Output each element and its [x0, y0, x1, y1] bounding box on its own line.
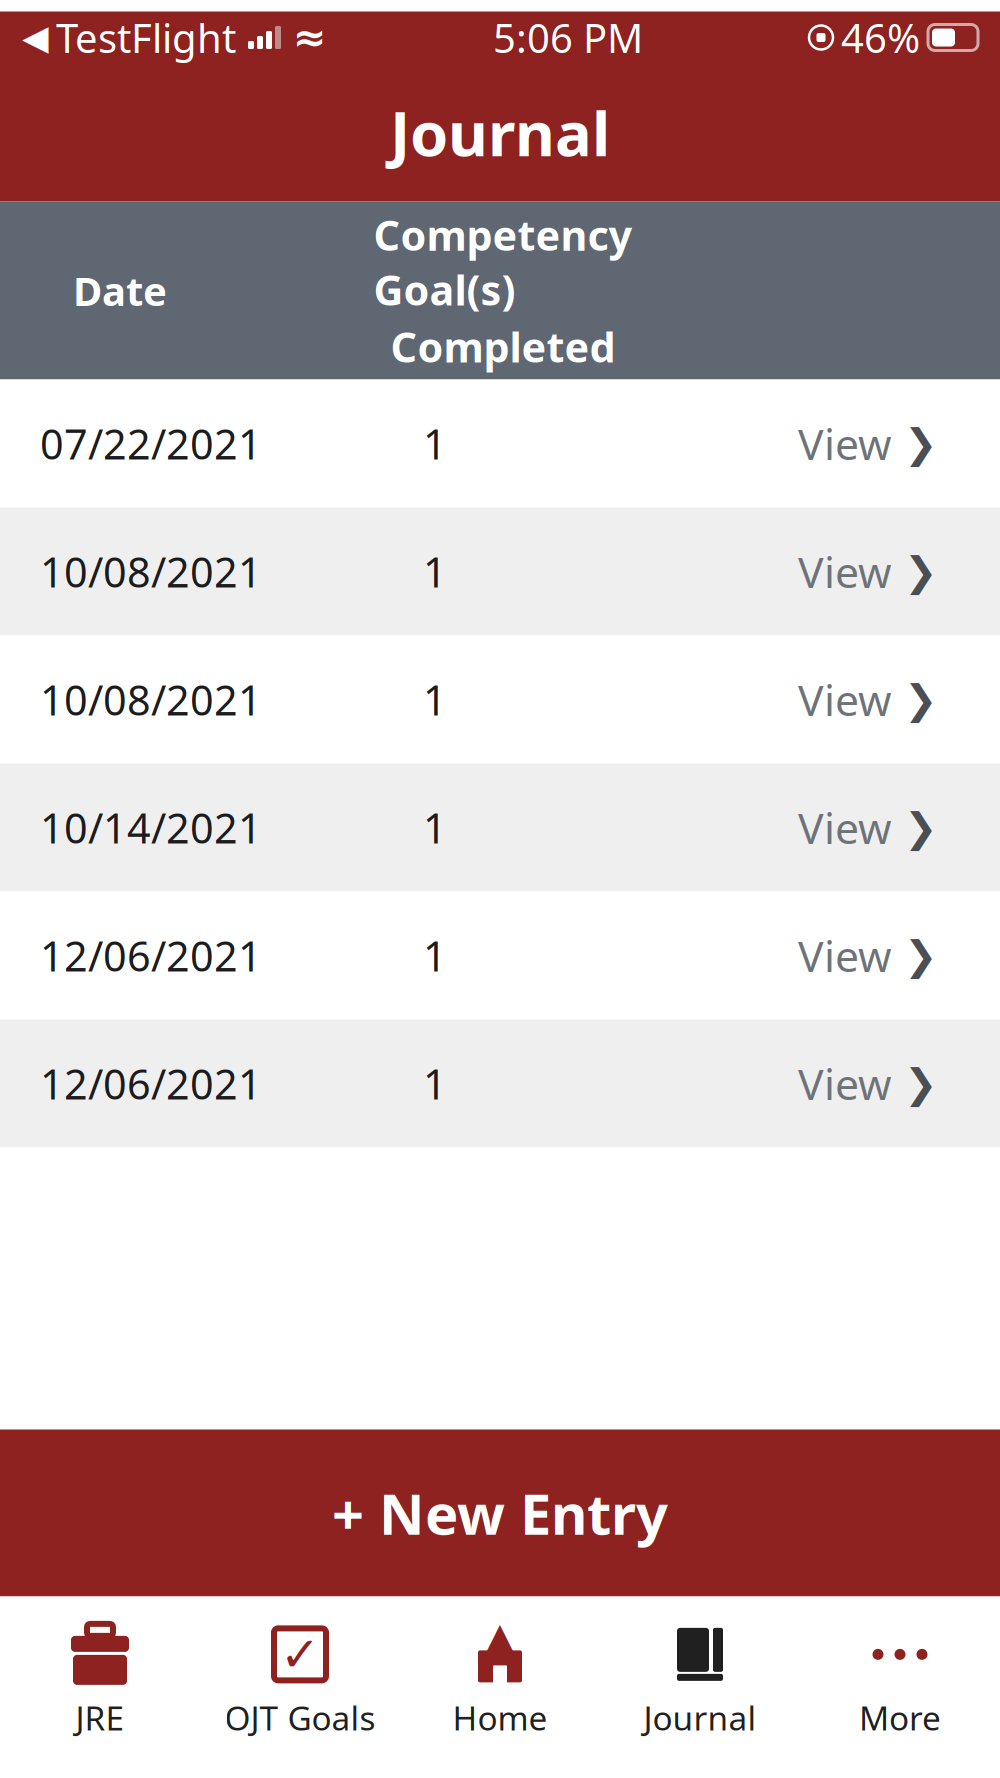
- staticText: 10/08/2021: [40, 672, 262, 727]
- button[interactable]: 07/22/2021: [0, 379, 1000, 507]
- button[interactable]: Journal: [600, 1606, 800, 1756]
- button[interactable]: + New Entry: [0, 1429, 1000, 1596]
- staticText: View: [798, 671, 892, 728]
- staticText: 07/22/2021: [40, 416, 262, 471]
- staticText: ❯: [904, 933, 938, 978]
- button[interactable]: 10/08/2021: [0, 635, 1000, 763]
- button[interactable]: 10/14/2021: [0, 763, 1000, 891]
- staticText: 1: [423, 544, 447, 599]
- button[interactable]: OJT Goals: [200, 1606, 400, 1756]
- staticText: Home: [452, 1695, 547, 1740]
- staticText: 5:06 PM: [493, 11, 643, 64]
- staticText: OJT Goals: [224, 1695, 375, 1740]
- staticText: TestFlight: [56, 11, 236, 64]
- staticText: View: [798, 799, 892, 856]
- staticText: View: [798, 927, 892, 984]
- staticText: View: [798, 415, 892, 472]
- staticText: 1: [423, 928, 447, 983]
- staticText: View: [798, 543, 892, 600]
- staticText: ≈: [293, 15, 327, 60]
- staticText: Completed: [390, 319, 615, 374]
- staticText: 1: [423, 800, 447, 855]
- staticText: ❯: [904, 1061, 938, 1106]
- staticText: + New Entry: [332, 1476, 668, 1550]
- staticText: 1: [423, 416, 447, 471]
- staticText: 12/06/2021: [40, 928, 262, 983]
- staticText: 1: [423, 1056, 447, 1111]
- staticText: ▲: [482, 1613, 517, 1664]
- staticText: ❯: [904, 805, 938, 850]
- staticText: ❯: [904, 677, 938, 722]
- staticText: 1: [423, 672, 447, 727]
- button[interactable]: 12/06/2021: [0, 1019, 1000, 1147]
- button[interactable]: 12/06/2021: [0, 891, 1000, 1019]
- button[interactable]: 10/08/2021: [0, 507, 1000, 635]
- staticText: ◀: [22, 18, 49, 57]
- staticText: More: [859, 1695, 941, 1740]
- staticText: JRE: [75, 1695, 124, 1740]
- staticText: View: [798, 1055, 892, 1112]
- staticText: Competency Goal(s): [373, 207, 632, 317]
- staticText: 12/06/2021: [40, 1056, 262, 1111]
- staticText: ❯: [904, 421, 938, 466]
- staticText: Journal: [390, 92, 610, 173]
- staticText: Journal: [643, 1695, 756, 1740]
- staticText: 10/14/2021: [40, 800, 262, 855]
- button[interactable]: JRE: [0, 1606, 200, 1756]
- staticText: ❯: [904, 549, 938, 594]
- staticText: 46%: [841, 11, 920, 64]
- staticText: 10/08/2021: [40, 544, 262, 599]
- button[interactable]: More: [800, 1606, 1000, 1756]
- staticText: Date: [73, 264, 167, 317]
- button[interactable]: Home: [400, 1606, 600, 1756]
- staticText: ✓: [280, 1627, 320, 1682]
